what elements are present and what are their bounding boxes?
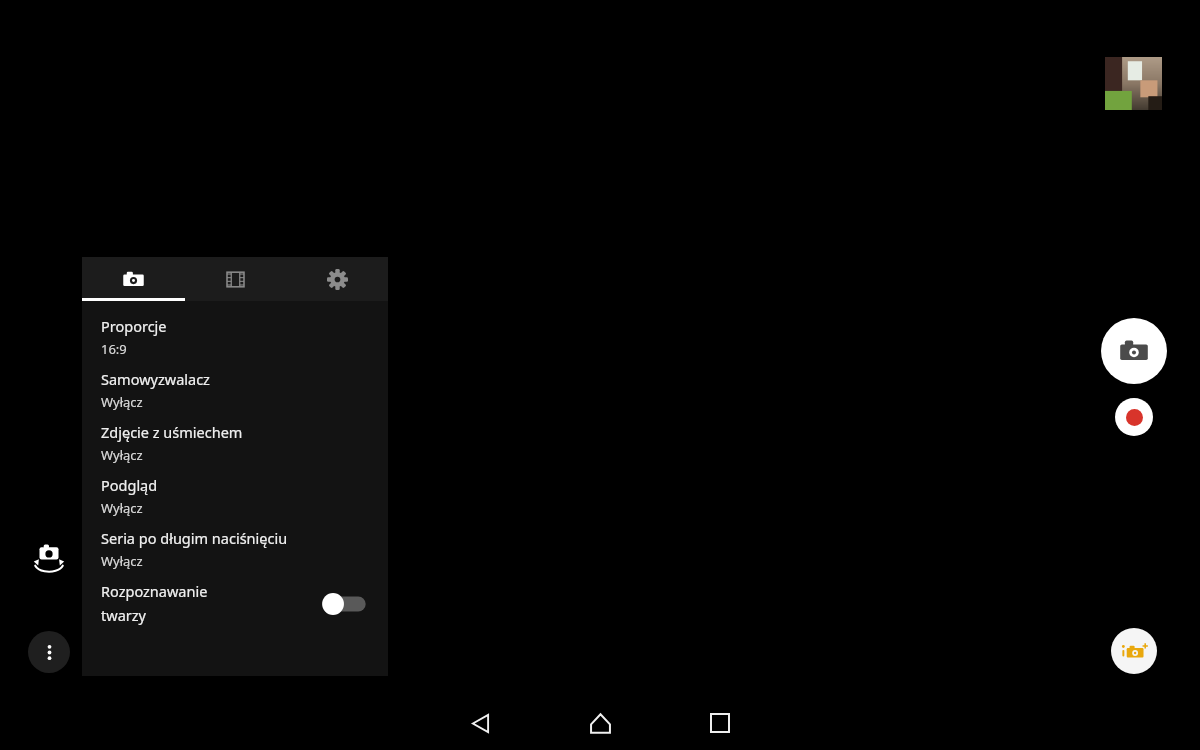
button[interactable]: Seria po długim naciśnięciu	[82, 524, 388, 577]
button[interactable]: Samowyzwalacz	[82, 365, 388, 418]
staticText: Samowyzwalacz	[101, 369, 210, 389]
button[interactable]: Back	[420, 696, 540, 750]
staticText: Proporcje	[101, 316, 167, 336]
staticText: Wyłącz	[101, 552, 143, 570]
staticText: Rozpoznawanie	[101, 581, 208, 601]
staticText: twarzy	[101, 605, 146, 625]
button[interactable]: Capturing mode	[1111, 628, 1157, 674]
button[interactable]: Rozpoznawanie	[82, 577, 388, 630]
button[interactable]: Switch camera	[25, 534, 73, 582]
staticText: Seria po długim naciśnięciu	[101, 528, 288, 548]
button[interactable]: Gallery thumbnail	[1105, 57, 1162, 110]
button[interactable]: Recent apps	[660, 696, 780, 750]
staticText: Podgląd	[101, 475, 158, 495]
button[interactable]: Record video	[1115, 398, 1153, 436]
button[interactable]: Home	[540, 696, 660, 750]
staticText: 16:9	[101, 340, 127, 358]
staticText: Wyłącz	[101, 393, 143, 411]
button[interactable]: Video settings tab	[184, 257, 286, 301]
button[interactable]: Photo settings tab	[82, 257, 184, 301]
button[interactable]: Podgląd	[82, 471, 388, 524]
staticText: Wyłącz	[101, 446, 143, 464]
button[interactable]: Proporcje	[82, 312, 388, 365]
button[interactable]: Zdjęcie z uśmiechem	[82, 418, 388, 471]
staticText: Zdjęcie z uśmiechem	[101, 422, 243, 442]
button[interactable]: General settings tab	[286, 257, 388, 301]
button[interactable]: More options	[28, 631, 70, 673]
staticText: Wyłącz	[101, 499, 143, 517]
button[interactable]: Shutter	[1101, 318, 1167, 384]
